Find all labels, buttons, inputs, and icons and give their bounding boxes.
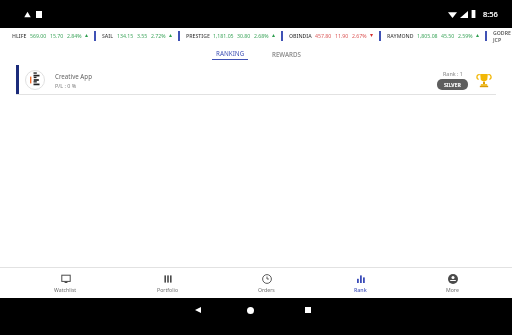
button[interactable]: REWARDS (264, 48, 309, 62)
staticText: 3.55 (137, 32, 148, 39)
button[interactable]: GODREJCP (493, 28, 512, 43)
button[interactable]: PRESTIGE (186, 32, 275, 39)
button[interactable]: Creative App (16, 65, 496, 95)
staticText: Orders (258, 286, 275, 293)
staticText: 134.15 (117, 32, 134, 39)
staticText: P/L : 0 % (55, 82, 77, 89)
staticText: HLIFE (12, 32, 27, 39)
button[interactable]: Watchlist (48, 272, 83, 295)
button[interactable]: RAYMOND (387, 32, 479, 39)
staticText: Rank (354, 286, 367, 293)
button[interactable]: SILVER (437, 79, 468, 90)
button[interactable]: Portfolio (151, 272, 185, 295)
staticText: 45.50 (441, 32, 455, 39)
staticText: SAIL (102, 32, 114, 39)
staticText: 30.80 (237, 32, 251, 39)
staticText: 2.68% (254, 32, 269, 39)
staticText: RAYMOND (387, 32, 414, 39)
staticText: OBINDIA (289, 32, 312, 39)
staticText: 1,805.08 (417, 32, 438, 39)
staticText: Creative App (55, 72, 92, 80)
staticText: 2.67% (352, 32, 367, 39)
staticText: 2.84% (67, 32, 82, 39)
button[interactable]: Orders (252, 272, 281, 295)
staticText: 1,181.05 (213, 32, 234, 39)
staticText: 15.70 (50, 32, 64, 39)
button[interactable]: Back (176, 304, 220, 316)
button[interactable]: HLIFE (12, 32, 88, 39)
staticText: 2.59% (458, 32, 473, 39)
button[interactable]: Rank (348, 272, 373, 295)
other: Trophy (476, 72, 492, 88)
staticText: RANKING (216, 49, 245, 57)
staticText: 569.00 (30, 32, 47, 39)
staticText: 457.80 (315, 32, 332, 39)
button[interactable]: RANKING (204, 46, 256, 63)
staticText: Portfolio (157, 286, 179, 293)
staticText: More (446, 286, 459, 293)
staticText: 2.72% (151, 32, 166, 39)
staticText: Watchlist (54, 286, 77, 293)
button[interactable]: Recents (280, 304, 336, 316)
staticText: SILVER (444, 81, 461, 88)
button[interactable]: OBINDIA (289, 32, 373, 39)
button[interactable]: Home (220, 304, 280, 316)
staticText: 8:56 (483, 9, 498, 19)
staticText: PRESTIGE (186, 32, 210, 39)
staticText: GODREJCP (493, 29, 512, 43)
staticText: 11.90 (335, 32, 349, 39)
staticText: Rank : 1 (443, 70, 463, 77)
staticText: REWARDS (272, 50, 301, 58)
button[interactable]: SAIL (102, 32, 172, 39)
button[interactable]: More (440, 272, 465, 295)
